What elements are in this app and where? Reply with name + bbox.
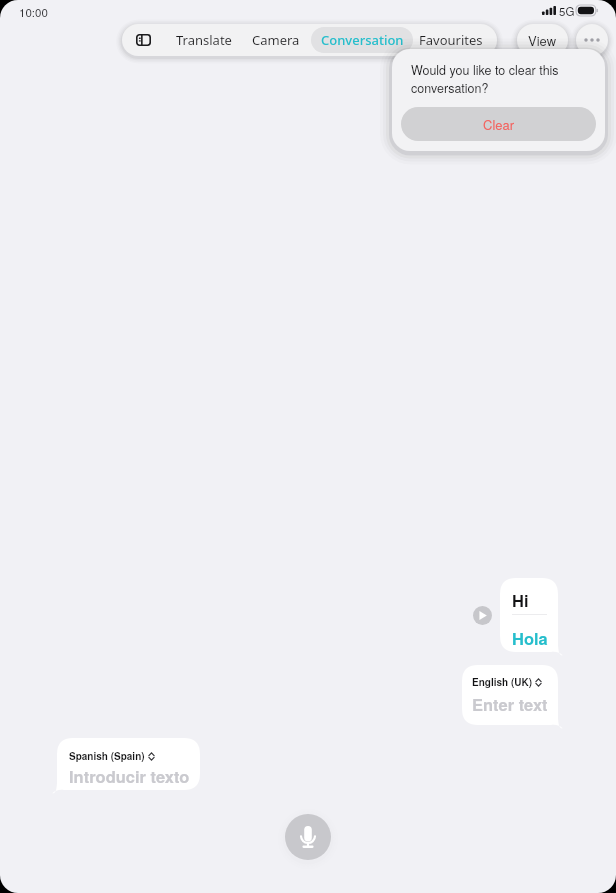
staticText: Translate: [176, 31, 232, 49]
staticText: Hi: [512, 588, 529, 612]
staticText: Hola: [512, 626, 548, 650]
button[interactable]: Clear: [401, 107, 596, 141]
staticText: Enter text: [472, 692, 548, 716]
button[interactable]: More options: [576, 24, 608, 56]
button[interactable]: Spanish (Spain): [57, 738, 200, 790]
staticText: View: [528, 31, 557, 50]
staticText: Camera: [252, 31, 300, 49]
staticText: Introducir texto: [69, 764, 190, 788]
button[interactable]: Camera: [246, 27, 306, 53]
button[interactable]: Hi: [500, 578, 558, 652]
button[interactable]: Microphone: [285, 814, 331, 860]
button[interactable]: Favourites: [412, 27, 490, 53]
button[interactable]: Play: [473, 606, 492, 625]
staticText: Favourites: [419, 31, 483, 49]
staticText: 5G: [559, 3, 575, 19]
staticText: Clear: [483, 115, 515, 134]
button[interactable]: Sidebar: [122, 24, 164, 56]
button[interactable]: Translate: [169, 27, 238, 53]
staticText: English (UK): [472, 675, 532, 689]
button[interactable]: Conversation: [311, 27, 413, 53]
staticText: Spanish (Spain): [69, 749, 145, 763]
button[interactable]: View: [517, 24, 568, 56]
staticText: Conversation: [321, 31, 404, 49]
button[interactable]: English (UK): [462, 665, 558, 725]
staticText: 10:00: [19, 4, 48, 20]
staticText: Would you like to clear this conversatio…: [411, 61, 571, 96]
